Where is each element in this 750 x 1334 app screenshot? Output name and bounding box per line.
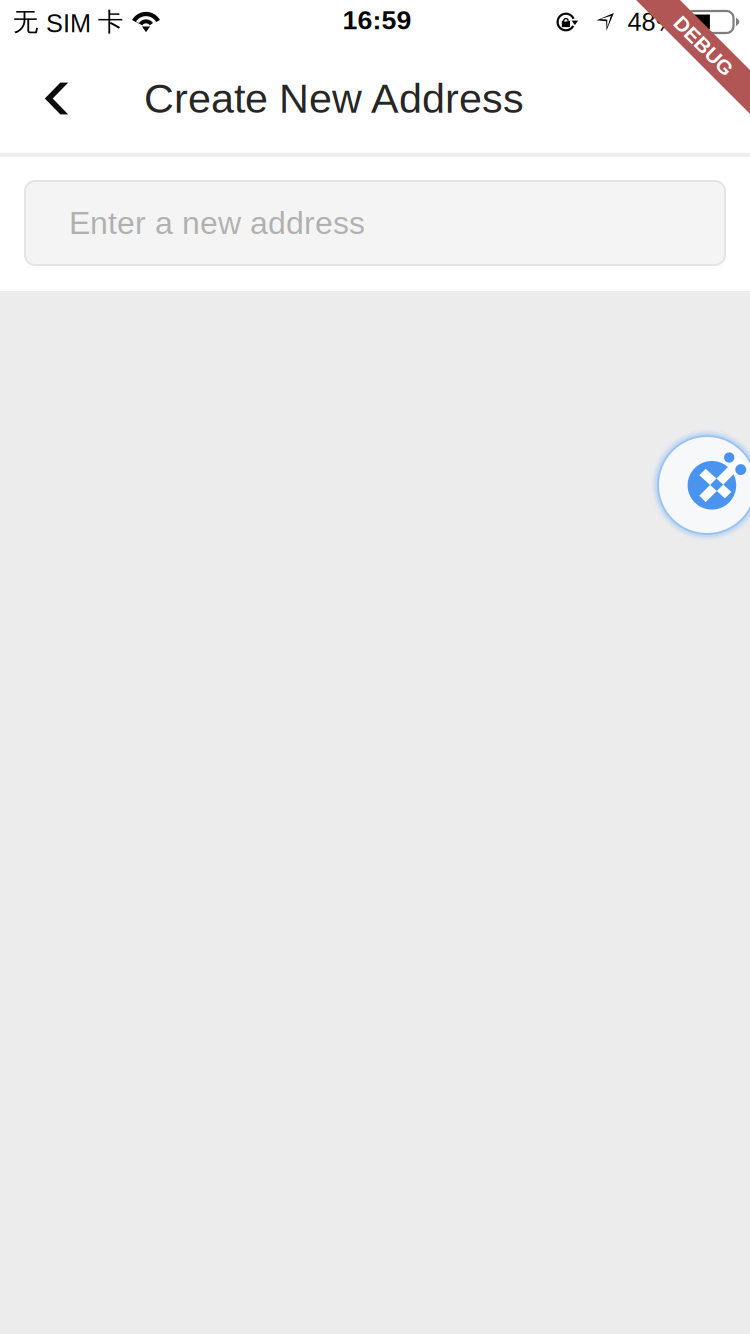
staticText: Create New Address bbox=[144, 75, 524, 122]
staticText: 48% bbox=[627, 8, 678, 36]
button[interactable]: Debug assistant bbox=[651, 429, 750, 541]
staticText: Enter a new address bbox=[69, 205, 365, 241]
staticText: 16:59 bbox=[342, 5, 411, 35]
button[interactable]: Back bbox=[0, 46, 89, 150]
staticText: DEBUG bbox=[666, 34, 742, 58]
staticText: 无 SIM 卡 bbox=[13, 6, 123, 38]
